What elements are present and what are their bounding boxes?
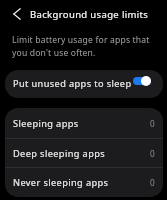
staticText: Sleeping apps xyxy=(13,117,79,130)
button[interactable]: Deep sleeping apps xyxy=(5,138,163,168)
staticText: 0 xyxy=(150,118,155,129)
button[interactable]: Navigate up xyxy=(2,0,32,28)
staticText: Background usage limits xyxy=(30,8,149,21)
staticText: Never sleeping apps xyxy=(13,176,109,189)
staticText: Limit battery usage for apps that you do… xyxy=(12,34,150,59)
staticText: Put unused apps to sleep xyxy=(13,77,132,90)
staticText: 0 xyxy=(150,177,155,188)
staticText: 0 xyxy=(150,148,155,159)
button[interactable]: Put unused apps to sleep xyxy=(5,70,163,98)
button[interactable]: Sleeping apps xyxy=(5,108,163,138)
staticText: Deep sleeping apps xyxy=(13,147,106,160)
button[interactable]: Never sleeping apps xyxy=(5,168,163,197)
